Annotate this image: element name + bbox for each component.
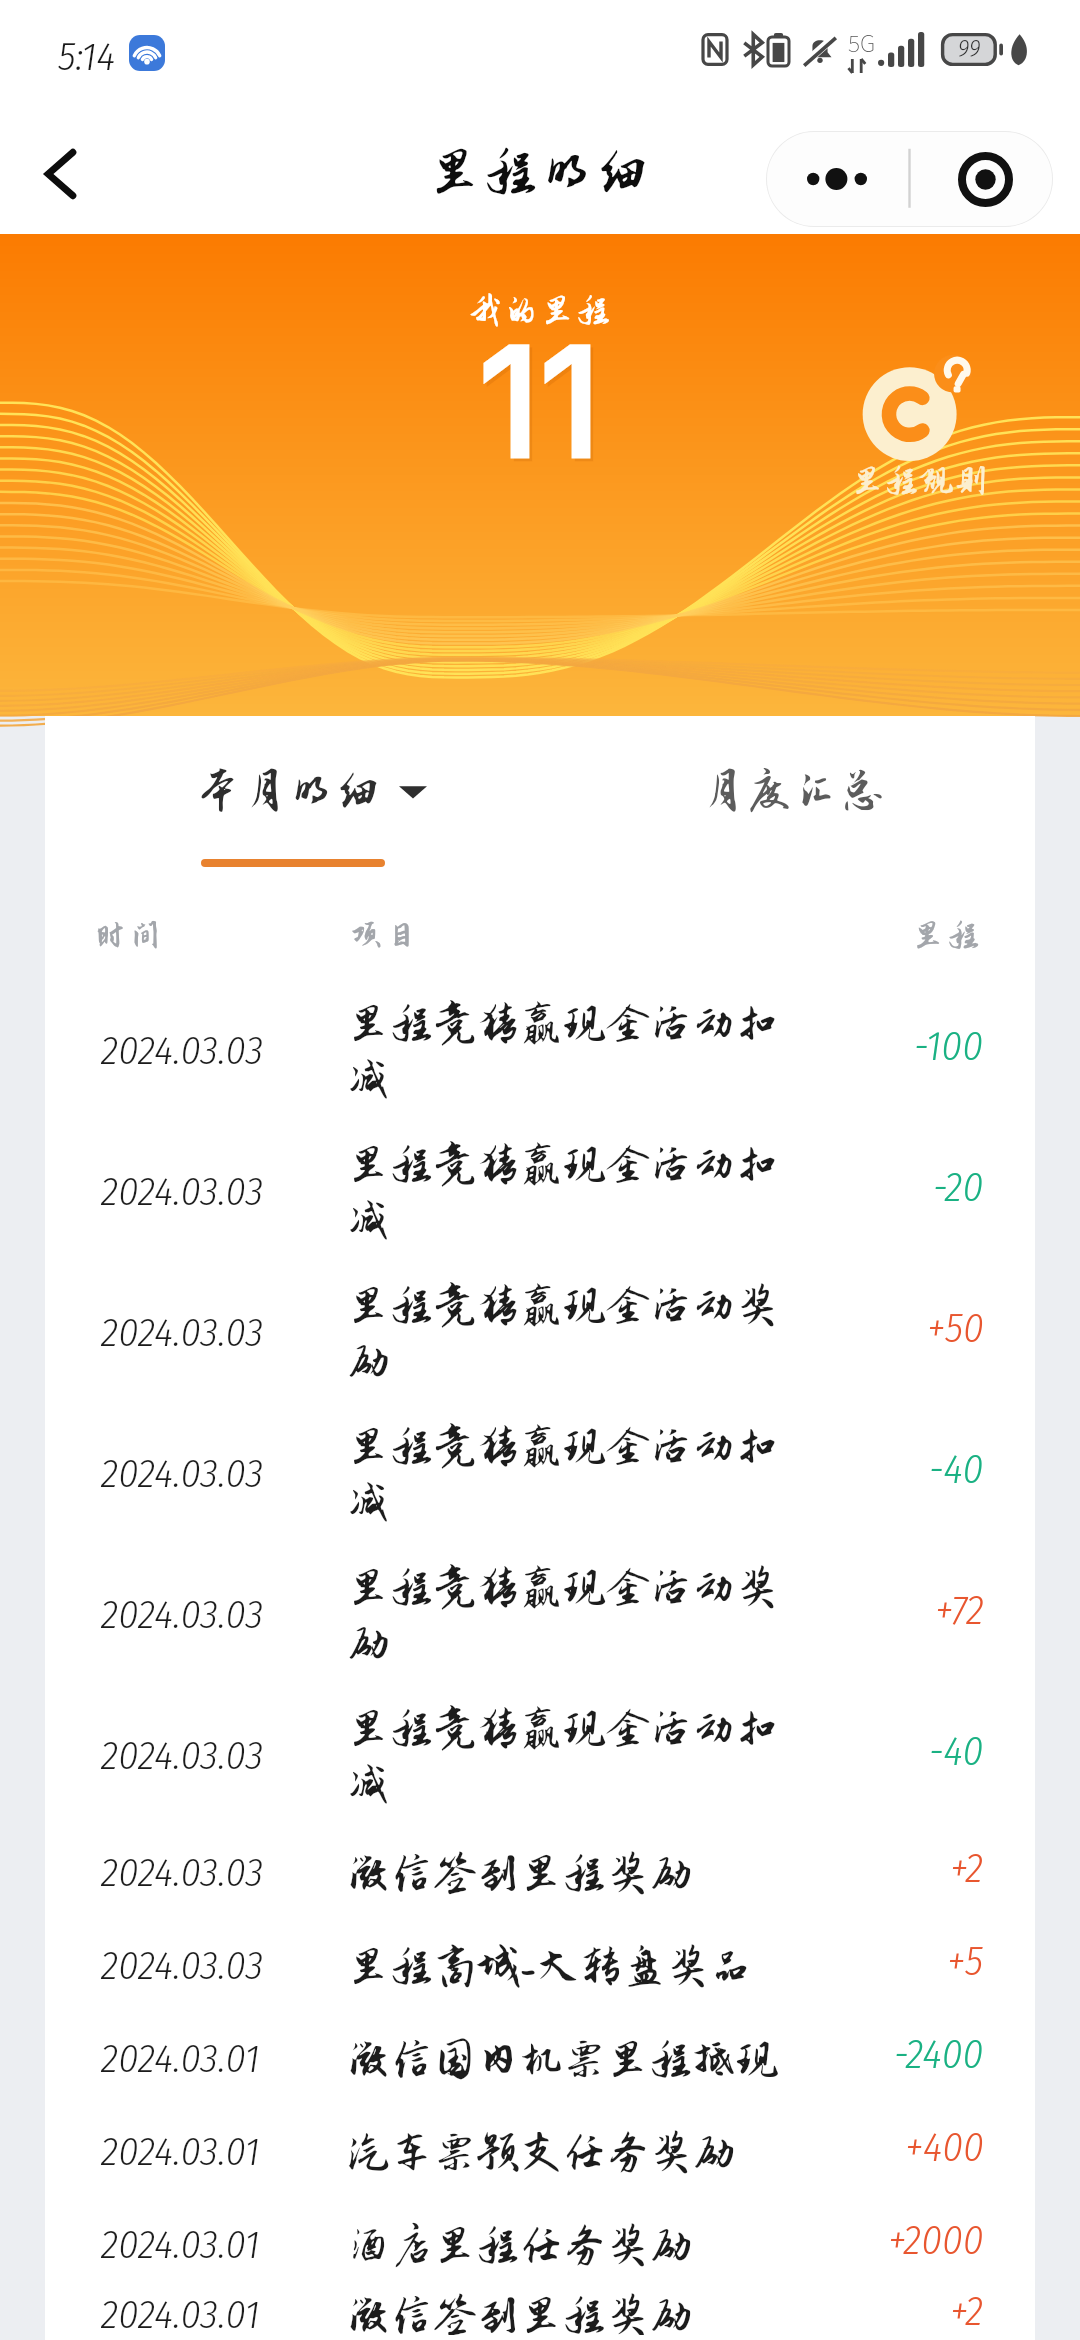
staticText: 酒店里程任务奖励 xyxy=(347,2222,693,2270)
button[interactable]: 2024.03.03 xyxy=(45,1127,1035,1268)
staticText: 2024.03.01 xyxy=(101,2035,260,2083)
staticText: 2024.03.03 xyxy=(101,1732,264,1780)
staticText: 5:14 xyxy=(58,33,116,81)
button[interactable]: 2024.03.03 xyxy=(45,1832,1035,1925)
staticText: 5G xyxy=(848,25,876,58)
staticText: +400 xyxy=(905,2123,984,2172)
staticText: 2024.03.03 xyxy=(101,1309,264,1357)
staticText: 微信国内机票里程抵现 xyxy=(347,2036,780,2084)
staticText: 里程竞猜赢现金活动扣减 xyxy=(347,1141,817,1245)
staticText: -20 xyxy=(933,1163,984,1212)
button[interactable]: 小程序菜单 xyxy=(766,131,1053,227)
button[interactable]: 2024.03.01 xyxy=(45,2204,1035,2297)
staticText: +2000 xyxy=(888,2216,984,2265)
staticText: +50 xyxy=(927,1304,984,1353)
button[interactable]: 2024.03.03 xyxy=(45,1409,1035,1550)
button[interactable]: 返回 xyxy=(22,133,104,215)
staticText: 汽车票预支任务奖励 xyxy=(347,2129,736,2177)
staticText: 里程竞猜赢现金活动奖励 xyxy=(347,1564,817,1668)
button[interactable]: 2024.03.03 xyxy=(45,1691,1035,1832)
staticText: 2024.03.01 xyxy=(101,2291,260,2334)
staticText: +2 xyxy=(950,2287,984,2330)
staticText: -2400 xyxy=(894,2030,984,2079)
staticText: -100 xyxy=(914,1022,984,1071)
button[interactable]: 2024.03.01 xyxy=(45,2018,1035,2111)
button[interactable]: 2024.03.01 xyxy=(45,2111,1035,2204)
staticText: -40 xyxy=(929,1727,984,1776)
staticText: 2024.03.03 xyxy=(101,1027,264,1075)
staticText: +5 xyxy=(947,1937,984,1986)
staticText: 99 xyxy=(958,35,981,64)
staticText: 2024.03.03 xyxy=(101,1942,264,1990)
staticText: 里程竞猜赢现金活动扣减 xyxy=(347,1000,817,1104)
staticText: 微信签到里程奖励 xyxy=(347,1850,693,1898)
staticText: 时间 xyxy=(94,917,165,953)
button[interactable]: 2024.03.03 xyxy=(45,1925,1035,2018)
staticText: -40 xyxy=(929,1445,984,1494)
button[interactable]: 2024.03.03 xyxy=(45,1268,1035,1409)
staticText: 2024.03.03 xyxy=(101,1450,264,1498)
staticText: 里程 xyxy=(912,917,983,953)
staticText: 2024.03.03 xyxy=(101,1849,264,1897)
staticText: 里程明细 xyxy=(428,142,652,202)
staticText: +72 xyxy=(935,1586,984,1635)
staticText: 项目 xyxy=(350,917,421,953)
button[interactable]: 里程规则 xyxy=(851,352,989,499)
staticText: 微信签到里程奖励 xyxy=(347,2292,693,2335)
button[interactable]: 本月明细 xyxy=(195,766,427,816)
staticText: 11 xyxy=(482,314,605,495)
staticText: 2024.03.03 xyxy=(101,1168,264,1216)
staticText: 我的里程 xyxy=(468,292,613,330)
staticText: 里程竞猜赢现金活动扣减 xyxy=(347,1705,817,1809)
staticText: 2024.03.03 xyxy=(101,1591,264,1639)
staticText: +2 xyxy=(950,1844,984,1893)
staticText: 里程规则 xyxy=(851,462,989,499)
button[interactable]: 月度汇总 xyxy=(700,766,888,816)
staticText: 里程竞猜赢现金活动扣减 xyxy=(347,1423,817,1527)
button[interactable]: 2024.03.03 xyxy=(45,986,1035,1127)
staticText: 里程竞猜赢现金活动奖励 xyxy=(347,1282,817,1386)
staticText: 11 xyxy=(479,311,602,492)
button[interactable]: 2024.03.03 xyxy=(45,1550,1035,1691)
button[interactable]: 2024.03.01 xyxy=(45,2297,1035,2340)
staticText: 里程商城-大转盘奖品 xyxy=(347,1943,753,1991)
staticText: 本月明细 xyxy=(195,766,383,816)
staticText: 2024.03.01 xyxy=(101,2128,260,2176)
staticText: 2024.03.01 xyxy=(101,2221,260,2269)
